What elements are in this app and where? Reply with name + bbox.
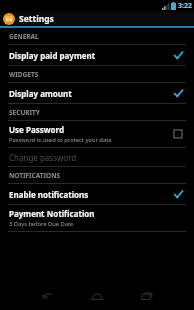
button[interactable]: Use Password (0, 121, 194, 147)
other: Enabled (171, 48, 185, 62)
staticText: Settings (19, 13, 54, 25)
button[interactable]: Display amount (0, 83, 194, 103)
button[interactable]: Home (80, 286, 114, 306)
staticText: Payment Notification (9, 208, 95, 219)
staticText: Change password (9, 152, 77, 163)
button[interactable]: Enable notifications (0, 184, 194, 204)
other: Enabled (171, 86, 185, 100)
staticText: Enable notifications (9, 189, 89, 200)
staticText: 3:22 (178, 1, 192, 11)
staticText: GENERAL (9, 32, 39, 41)
button[interactable]: Settings (0, 12, 194, 26)
staticText: SECURITY (9, 108, 40, 117)
button[interactable]: Payment Notification (0, 205, 194, 231)
staticText: Display paid payment (9, 50, 96, 61)
staticText: Use Password (9, 124, 65, 135)
staticText: NOTIFICATIONS (9, 171, 61, 180)
staticText: Display amount (9, 88, 72, 99)
button[interactable]: Display paid payment (0, 45, 194, 65)
staticText: WIDGETS (9, 70, 39, 79)
other: Enabled (171, 187, 185, 201)
button[interactable]: Change password (0, 148, 194, 166)
button[interactable]: Back (30, 286, 64, 306)
staticText: Password is used to protect your data (9, 136, 112, 144)
staticText: 3 Days before Due Date (9, 220, 74, 228)
button[interactable]: Recent apps (130, 286, 164, 306)
other: Disabled checkbox (171, 127, 185, 141)
